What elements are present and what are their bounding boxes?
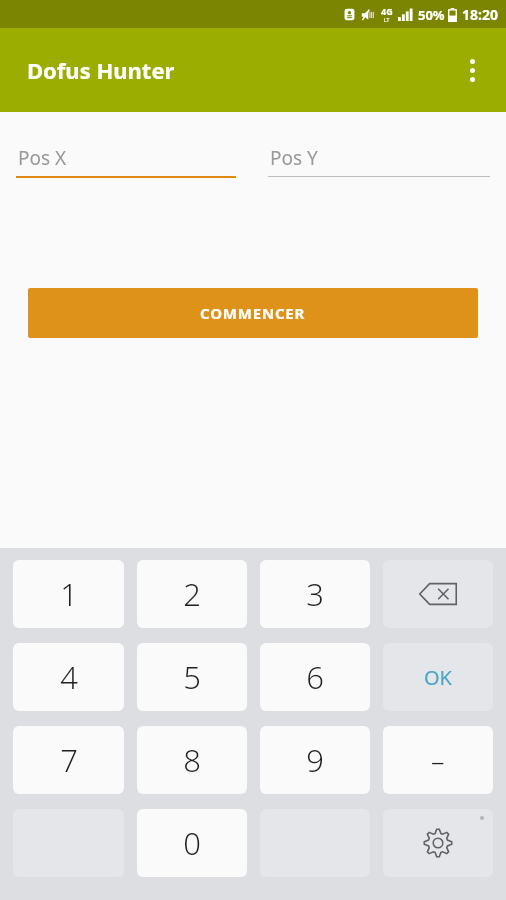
staticText: 1	[60, 573, 78, 615]
button[interactable]: Pos Y	[268, 140, 490, 177]
staticText: 8	[183, 739, 201, 781]
staticText: OK	[424, 664, 452, 691]
button[interactable]: 9	[260, 726, 370, 794]
button[interactable]: 1	[13, 560, 124, 628]
staticText: 6	[306, 656, 324, 698]
button[interactable]: 6	[260, 643, 370, 711]
button[interactable]: Keyboard settings	[383, 809, 493, 877]
button[interactable]: 8	[137, 726, 247, 794]
button[interactable]: –	[383, 726, 493, 794]
staticText: 4G	[381, 5, 393, 17]
staticText: Dofus Hunter	[27, 55, 175, 85]
staticText: 5	[183, 656, 201, 698]
button[interactable]: 7	[13, 726, 124, 794]
button[interactable]: COMMENCER	[28, 288, 478, 338]
button[interactable]: More options	[448, 46, 496, 94]
staticText: COMMENCER	[200, 303, 306, 323]
button[interactable]: Backspace	[383, 560, 493, 628]
staticText: 7	[60, 739, 78, 781]
staticText: 2	[183, 573, 201, 615]
button[interactable]: 2	[137, 560, 247, 628]
button[interactable]: Pos X	[16, 140, 236, 178]
staticText: Pos X	[18, 145, 67, 171]
staticText: 50%	[418, 6, 445, 24]
button[interactable]: OK	[383, 643, 493, 711]
staticText: 18:20	[462, 5, 498, 24]
button[interactable]: 3	[260, 560, 370, 628]
staticText: Pos Y	[270, 145, 318, 171]
button[interactable]: 5	[137, 643, 247, 711]
staticText: 0	[183, 822, 201, 864]
staticText: LT	[384, 17, 390, 24]
staticText: 3	[306, 573, 324, 615]
button[interactable]: 0	[137, 809, 247, 877]
button[interactable]: 4	[13, 643, 124, 711]
staticText: 9	[306, 739, 324, 781]
staticText: –	[431, 742, 445, 779]
staticText: 4	[60, 656, 78, 698]
